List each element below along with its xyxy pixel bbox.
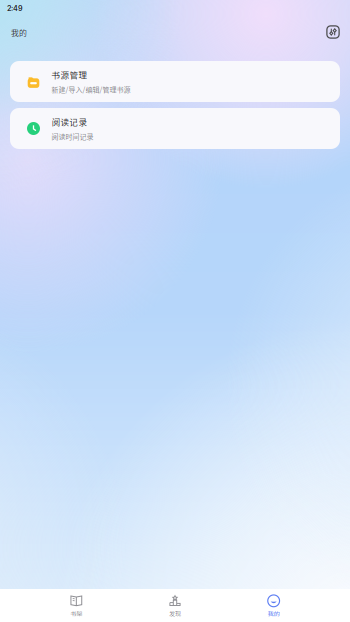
staticText: 2:49 (7, 4, 23, 13)
button[interactable]: 阅读记录 (10, 108, 340, 149)
staticText: 书架 (70, 609, 82, 618)
staticText: 阅读时间记录 (51, 131, 93, 141)
button[interactable]: 书架 (27, 589, 126, 622)
button[interactable]: 书源管理 (10, 61, 340, 102)
button[interactable]: Settings (320, 17, 346, 43)
staticText: 阅读记录 (51, 115, 87, 128)
staticText: 我的 (268, 609, 280, 618)
button[interactable]: 我的 (224, 589, 323, 622)
staticText: 发现 (169, 609, 181, 618)
staticText: 我的 (11, 27, 27, 38)
staticText: 书源管理 (51, 68, 87, 81)
button[interactable]: 发现 (126, 589, 224, 622)
staticText: 新建/导入/编辑/管理书源 (51, 84, 130, 94)
